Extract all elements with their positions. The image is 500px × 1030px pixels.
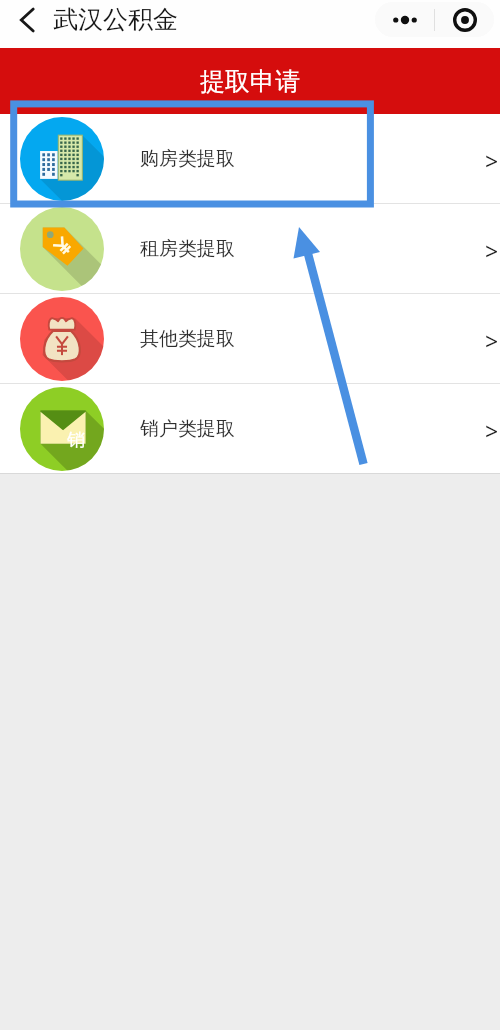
staticText: 提取申请 xyxy=(200,66,300,97)
button[interactable]: 购房类提取 xyxy=(0,114,500,203)
staticText: 销 xyxy=(67,429,85,452)
staticText: 销户类提取 xyxy=(140,417,235,441)
staticText: > xyxy=(485,325,499,356)
staticText: 武汉公积金 xyxy=(53,4,178,35)
staticText: > xyxy=(485,415,499,446)
staticText: 租房类提取 xyxy=(140,237,235,261)
staticText: 购房类提取 xyxy=(140,147,235,171)
button[interactable]: Close mini program xyxy=(435,2,494,37)
button[interactable]: 销 xyxy=(0,384,500,473)
staticText: > xyxy=(485,145,499,176)
button[interactable]: 其他类提取 xyxy=(0,294,500,383)
staticText: > xyxy=(485,235,499,266)
button[interactable]: More options xyxy=(375,2,434,37)
staticText: 其他类提取 xyxy=(140,327,235,351)
button[interactable]: Back xyxy=(14,7,40,33)
button[interactable]: 租房类提取 xyxy=(0,204,500,293)
